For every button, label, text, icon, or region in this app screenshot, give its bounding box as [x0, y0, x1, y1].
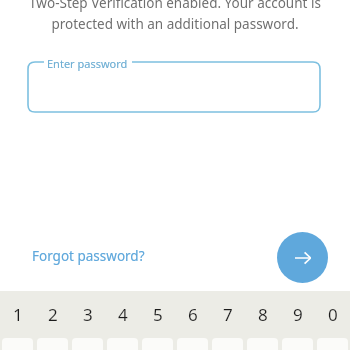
button[interactable]: 5 — [140, 291, 175, 338]
button[interactable]: 7 — [210, 291, 245, 338]
button[interactable]: Continue — [277, 232, 328, 283]
staticText: 2 — [48, 303, 58, 326]
button[interactable]: 2 — [35, 291, 70, 338]
staticText: Enter password — [47, 56, 128, 71]
button[interactable]: 4 — [105, 291, 140, 338]
staticText: 3 — [83, 303, 93, 326]
button[interactable]: 0 — [315, 291, 350, 338]
staticText: 0 — [328, 303, 338, 326]
button[interactable]: 9 — [280, 291, 315, 338]
staticText: 5 — [153, 303, 163, 326]
button[interactable]: Forgot password? — [24, 243, 153, 269]
staticText: 4 — [118, 303, 128, 326]
staticText: Two-Step Verification enabled. Your acco… — [18, 0, 332, 33]
button[interactable]: Enter password — [28, 62, 320, 112]
button[interactable]: 6 — [175, 291, 210, 338]
button[interactable]: 8 — [245, 291, 280, 338]
button[interactable]: 1 — [0, 291, 35, 338]
button[interactable]: 3 — [70, 291, 105, 338]
staticText: 9 — [293, 303, 303, 326]
staticText: 8 — [258, 303, 268, 326]
staticText: 6 — [188, 303, 198, 326]
staticText: 7 — [223, 303, 233, 326]
staticText: 1 — [13, 303, 23, 326]
staticText: Forgot password? — [32, 247, 145, 265]
